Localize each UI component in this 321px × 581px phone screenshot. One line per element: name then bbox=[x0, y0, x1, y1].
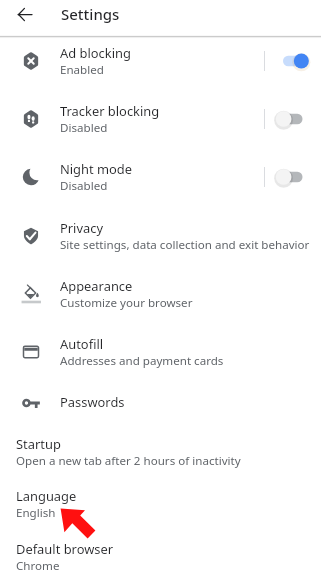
button[interactable]: Ad blocking bbox=[0, 42, 321, 100]
button[interactable]: Passwords bbox=[0, 391, 321, 449]
staticText: Night mode bbox=[60, 160, 133, 178]
staticText: Open a new tab after 2 hours of inactivi… bbox=[16, 453, 241, 469]
staticText: Disabled bbox=[60, 120, 108, 136]
button[interactable]: Back bbox=[11, 0, 39, 28]
staticText: Default browser bbox=[16, 540, 114, 558]
staticText: Addresses and payment cards bbox=[60, 353, 224, 369]
staticText: Enabled bbox=[60, 62, 104, 78]
staticText: Language bbox=[16, 487, 77, 505]
button[interactable]: Night mode bbox=[0, 158, 321, 216]
staticText: Disabled bbox=[60, 178, 108, 194]
staticText: Tracker blocking bbox=[60, 102, 160, 120]
staticText: Appearance bbox=[60, 277, 133, 295]
staticText: Startup bbox=[16, 435, 61, 453]
button[interactable]: Privacy bbox=[0, 217, 321, 275]
button[interactable]: Turn off bbox=[272, 48, 310, 74]
staticText: Customize your browser bbox=[60, 295, 193, 311]
staticText: Site settings, data collection and exit … bbox=[60, 237, 310, 253]
staticText: Privacy bbox=[60, 219, 103, 237]
button[interactable]: Turn on bbox=[272, 106, 310, 132]
button[interactable]: Tracker blocking bbox=[0, 100, 321, 158]
button[interactable]: Startup bbox=[0, 433, 321, 485]
staticText: Chrome bbox=[16, 558, 60, 574]
button[interactable]: Autofill bbox=[0, 333, 321, 391]
staticText: Ad blocking bbox=[60, 44, 131, 62]
button[interactable]: Language bbox=[0, 485, 321, 537]
button[interactable]: Appearance bbox=[0, 275, 321, 333]
staticText: English bbox=[16, 505, 56, 521]
button[interactable]: Turn on bbox=[272, 164, 310, 190]
button[interactable]: Default browser bbox=[0, 538, 321, 581]
staticText: Settings bbox=[61, 4, 120, 24]
staticText: Passwords bbox=[60, 393, 125, 411]
staticText: Autofill bbox=[60, 335, 104, 353]
